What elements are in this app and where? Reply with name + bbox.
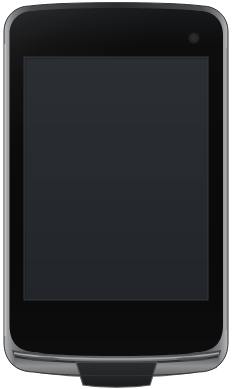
button[interactable]: Device front view [0,0,233,389]
